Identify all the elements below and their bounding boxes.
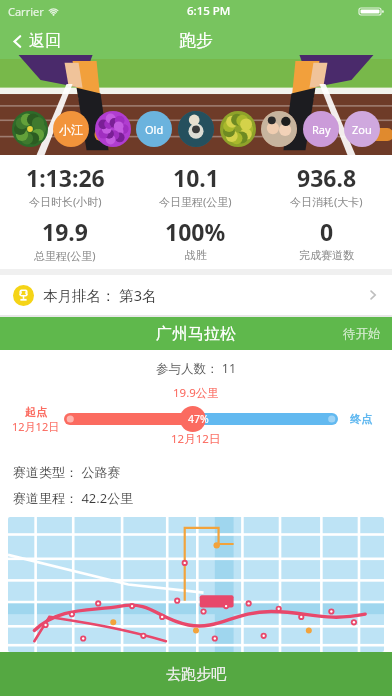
staticText: Old bbox=[145, 122, 164, 137]
button[interactable]: 10.1 bbox=[130, 162, 261, 209]
button[interactable]: 19.9 bbox=[0, 216, 130, 263]
staticText: 参与人数： 11 bbox=[0, 360, 392, 377]
button[interactable]: 1:13:26 bbox=[0, 162, 130, 209]
staticText: Carrier bbox=[8, 4, 44, 19]
staticText: 待开始 bbox=[343, 326, 381, 342]
staticText: 936.8 bbox=[297, 162, 357, 193]
staticText: 47% bbox=[188, 412, 209, 426]
button[interactable]: 返回 bbox=[0, 25, 73, 57]
staticText: 小江 bbox=[59, 122, 83, 137]
staticText: 0 bbox=[320, 216, 334, 247]
staticText: Zou bbox=[352, 122, 372, 137]
staticText: 战胜 bbox=[185, 248, 207, 262]
staticText: 广州马拉松 bbox=[156, 324, 236, 344]
staticText: 1:13:26 bbox=[26, 162, 105, 193]
staticText: 100% bbox=[165, 216, 226, 247]
staticText: Ray bbox=[312, 122, 331, 137]
button[interactable]: 100% bbox=[130, 216, 261, 262]
staticText: 返回 bbox=[29, 31, 61, 51]
staticText: 跑步 bbox=[179, 30, 213, 51]
staticText: 总里程(公里) bbox=[34, 248, 96, 263]
staticText: 今日时长(小时) bbox=[29, 194, 102, 209]
staticText: 起点 bbox=[25, 405, 47, 419]
staticText: 10.1 bbox=[173, 162, 219, 193]
button[interactable]: Zou bbox=[344, 111, 380, 147]
button[interactable]: Runner bbox=[178, 111, 214, 147]
staticText: 去跑步吧 bbox=[166, 665, 226, 684]
staticText: 12月12日 bbox=[171, 431, 221, 447]
staticText: 终点 bbox=[350, 412, 372, 426]
button[interactable]: Runner bbox=[261, 111, 297, 147]
button[interactable]: 本月排名： 第3名 bbox=[0, 275, 392, 315]
button[interactable]: 小江 bbox=[53, 111, 89, 147]
button[interactable]: Old bbox=[136, 111, 172, 147]
button[interactable]: 广州马拉松 bbox=[0, 317, 392, 350]
staticText: 本月排名： 第3名 bbox=[43, 285, 157, 305]
staticText: 今日里程(公里) bbox=[159, 194, 232, 209]
staticText: 赛道类型： 公路赛 bbox=[13, 463, 121, 481]
button[interactable]: 去跑步吧 bbox=[0, 652, 392, 696]
button[interactable]: Course map bbox=[8, 517, 384, 652]
staticText: 完成赛道数 bbox=[299, 248, 354, 262]
button[interactable]: 936.8 bbox=[261, 162, 392, 209]
staticText: 今日消耗(大卡) bbox=[290, 194, 363, 209]
staticText: 6:15 PM bbox=[187, 3, 231, 19]
button[interactable]: Runner bbox=[12, 111, 48, 147]
button[interactable]: Runner bbox=[95, 111, 131, 147]
staticText: 赛道里程： 42.2公里 bbox=[13, 489, 134, 507]
staticText: 12月12日 bbox=[12, 419, 60, 434]
staticText: 19.9 bbox=[42, 216, 88, 247]
button[interactable]: 0 bbox=[261, 216, 392, 262]
button[interactable]: Ray bbox=[303, 111, 339, 147]
button[interactable]: Runner bbox=[220, 111, 256, 147]
staticText: 19.9公里 bbox=[173, 385, 219, 401]
